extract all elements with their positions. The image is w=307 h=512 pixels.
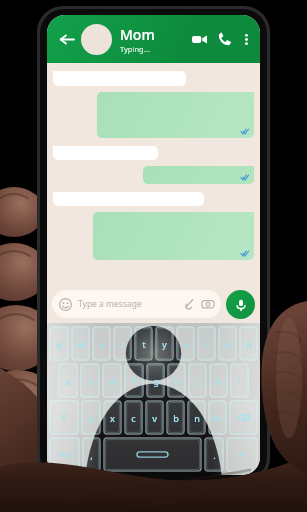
staticText: z	[89, 412, 94, 424]
staticText: c	[131, 412, 136, 424]
button[interactable]: ?123	[49, 437, 80, 472]
staticText: e	[99, 338, 105, 350]
staticText: ,	[90, 449, 93, 461]
button[interactable]: l	[230, 363, 249, 398]
button[interactable]: u	[176, 326, 195, 361]
button[interactable]: v	[145, 400, 164, 435]
button[interactable]: ⌫	[229, 400, 258, 435]
button[interactable]: Space	[103, 437, 202, 472]
button[interactable]: a	[58, 363, 78, 398]
button[interactable]: Contact photo	[81, 24, 112, 55]
button[interactable]: q	[49, 326, 69, 361]
staticText: f	[132, 375, 136, 387]
staticText: ⌫	[237, 413, 250, 423]
button[interactable]: Back	[53, 26, 79, 52]
button[interactable]: o	[218, 326, 237, 361]
staticText: m	[213, 412, 222, 424]
staticText: o	[225, 338, 231, 350]
button[interactable]: g	[146, 363, 165, 398]
staticText: b	[173, 412, 179, 424]
button[interactable]: .	[204, 437, 224, 472]
button[interactable]: i	[197, 326, 216, 361]
button[interactable]: h	[167, 363, 186, 398]
staticText: a	[65, 375, 71, 387]
button[interactable]	[97, 92, 254, 138]
staticText: n	[194, 412, 200, 424]
staticText: t	[142, 338, 146, 350]
button[interactable]: y	[155, 326, 174, 361]
button[interactable]	[53, 146, 158, 160]
button[interactable]: Video call	[186, 26, 212, 52]
button[interactable]: s	[80, 363, 100, 398]
button[interactable]: z	[81, 400, 101, 435]
button[interactable]: w	[71, 326, 90, 361]
staticText: ⇧	[60, 413, 68, 423]
staticText: q	[56, 338, 62, 350]
staticText: v	[152, 412, 157, 424]
button[interactable]: p	[239, 326, 258, 361]
button[interactable]: Type a message	[59, 290, 214, 318]
staticText: i	[205, 338, 208, 350]
staticText: r	[121, 338, 125, 350]
button[interactable]: f	[124, 363, 144, 398]
button[interactable]: Mom	[120, 25, 186, 54]
button[interactable]: k	[209, 363, 228, 398]
staticText: j	[196, 375, 199, 387]
staticText: x	[110, 412, 115, 424]
staticText: .	[213, 449, 216, 461]
button[interactable]: c	[124, 400, 143, 435]
staticText: l	[238, 375, 241, 387]
button[interactable]: d	[102, 363, 122, 398]
staticText: g	[153, 375, 159, 387]
button[interactable]: j	[188, 363, 207, 398]
staticText: ↵	[238, 450, 246, 460]
staticText: d	[109, 375, 115, 387]
button[interactable]: r	[113, 326, 132, 361]
staticText: ?123	[59, 451, 71, 458]
button[interactable]: ⇧	[49, 400, 79, 435]
button[interactable]: Call	[212, 26, 238, 52]
button[interactable]: m	[208, 400, 227, 435]
button[interactable]: Voice message	[226, 290, 255, 319]
button[interactable]: e	[92, 326, 111, 361]
staticText: Typing...	[120, 44, 150, 54]
button[interactable]	[143, 166, 254, 184]
staticText: Mom	[120, 25, 155, 44]
button[interactable]	[93, 212, 254, 260]
staticText: k	[216, 375, 222, 387]
staticText: w	[77, 338, 85, 350]
button[interactable]: b	[166, 400, 185, 435]
staticText: h	[174, 375, 180, 387]
staticText: Type a message	[78, 298, 184, 310]
button[interactable]: ↵	[226, 437, 258, 472]
button[interactable]: t	[134, 326, 153, 361]
staticText: s	[88, 375, 93, 387]
staticText: p	[246, 338, 252, 350]
button[interactable]: x	[103, 400, 122, 435]
staticText: y	[162, 338, 167, 350]
button[interactable]: ,	[82, 437, 101, 472]
button[interactable]: n	[187, 400, 206, 435]
button[interactable]: More options	[238, 26, 254, 52]
staticText: u	[183, 338, 189, 350]
